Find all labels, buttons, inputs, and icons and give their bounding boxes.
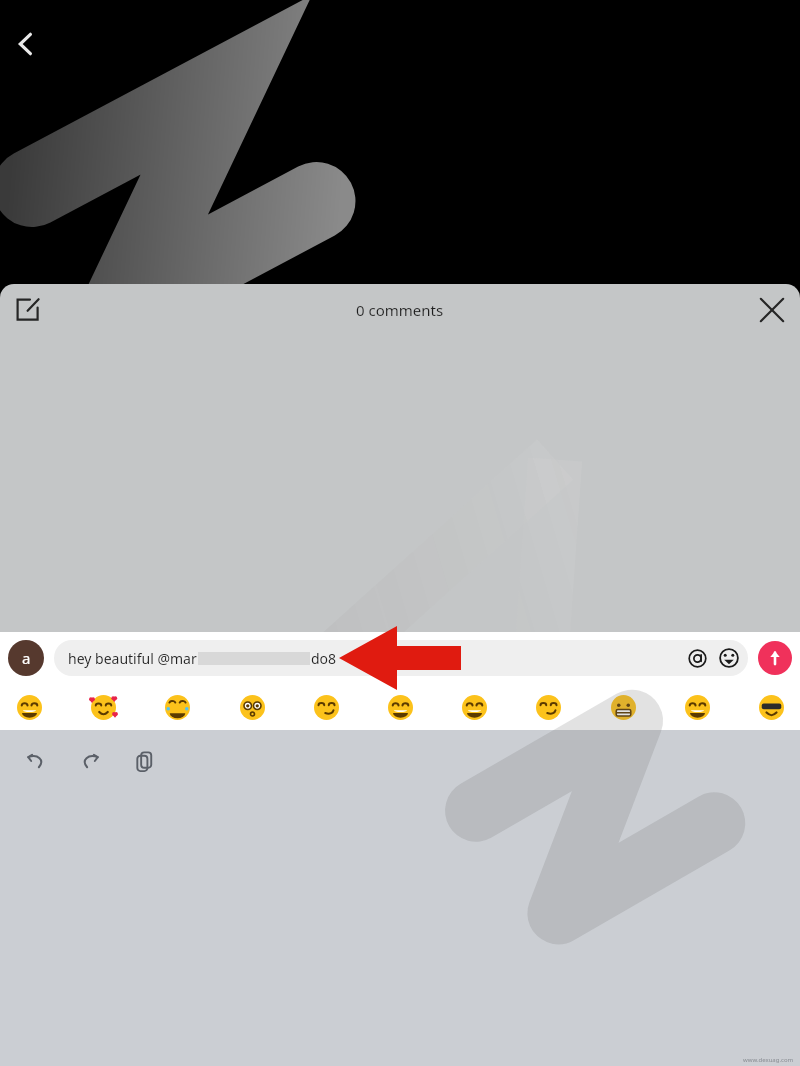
button[interactable]: Redo xyxy=(74,744,108,778)
button[interactable]: Clipboard xyxy=(128,744,162,778)
button[interactable]: relieved xyxy=(533,692,563,722)
button[interactable]: Undo xyxy=(18,744,52,778)
button[interactable]: joy xyxy=(162,692,192,722)
button[interactable]: grin xyxy=(14,692,44,722)
staticText: a xyxy=(22,648,31,668)
button[interactable]: Send xyxy=(758,641,792,675)
staticText: hey beautiful @mar xyxy=(68,649,197,668)
button[interactable]: sweat xyxy=(385,692,415,722)
button[interactable]: love xyxy=(88,692,118,722)
button[interactable]: grimace xyxy=(608,692,638,722)
button[interactable]: upside xyxy=(682,692,712,722)
button[interactable]: cool xyxy=(756,692,786,722)
button[interactable]: Close xyxy=(752,290,792,330)
staticText: do8 xyxy=(311,649,337,668)
button[interactable]: Compose xyxy=(8,290,48,330)
staticText: www.dexuag.com xyxy=(743,1056,794,1064)
button[interactable]: Emoji xyxy=(712,641,746,675)
button[interactable]: smirk xyxy=(311,692,341,722)
button[interactable]: plead xyxy=(459,692,489,722)
button[interactable]: Back xyxy=(4,22,48,66)
staticText: 0 comments xyxy=(356,300,444,320)
button[interactable]: flushed xyxy=(237,692,267,722)
button[interactable]: Mention xyxy=(682,643,712,673)
button[interactable]: hey beautiful @mar xyxy=(54,640,748,676)
button[interactable]: a xyxy=(8,640,44,676)
